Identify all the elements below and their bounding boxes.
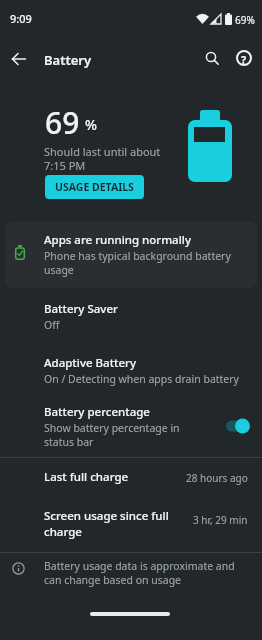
staticText: On / Detecting when apps drain battery	[44, 372, 239, 386]
staticText: ?	[241, 52, 247, 67]
staticText: Should last until about 7:15 PM	[44, 144, 161, 174]
button[interactable]: USAGE DETAILS	[45, 175, 144, 199]
staticText: Battery usage data is approximate and ca…	[44, 559, 235, 587]
staticText: Adaptive Battery	[44, 355, 136, 371]
button[interactable]: Adaptive Battery	[0, 348, 262, 398]
staticText: 69%	[235, 13, 255, 27]
button[interactable]: Battery percentage	[0, 398, 262, 457]
staticText: Last full charge	[44, 469, 129, 485]
button[interactable]: Apps are running normally	[5, 222, 257, 288]
button[interactable]	[202, 48, 224, 70]
staticText: 28 hours ago	[186, 471, 248, 485]
staticText: Phone has typical background battery usa…	[44, 249, 231, 277]
staticText: Battery percentage	[44, 404, 150, 420]
staticText: 9:09	[10, 11, 32, 26]
staticText: Off	[44, 318, 60, 332]
staticText: %	[85, 115, 97, 134]
staticText: Screen usage since full charge	[44, 508, 169, 539]
button[interactable]: Battery Saver	[0, 294, 262, 348]
button[interactable]: Last full charge	[0, 462, 262, 502]
button[interactable]: Screen usage since full charge	[0, 502, 262, 550]
staticText: Show battery percentage in status bar	[44, 421, 180, 449]
staticText: 69	[45, 102, 80, 143]
staticText: Apps are running normally	[44, 232, 191, 248]
staticText: Battery Saver	[44, 301, 118, 317]
staticText: USAGE DETAILS	[55, 180, 134, 194]
button[interactable]	[90, 612, 170, 616]
staticText: 3 hr, 29 min	[193, 513, 248, 527]
button[interactable]	[6, 46, 32, 72]
button[interactable]	[224, 416, 252, 436]
button[interactable]: ?	[234, 49, 254, 69]
staticText: Battery	[44, 51, 92, 69]
